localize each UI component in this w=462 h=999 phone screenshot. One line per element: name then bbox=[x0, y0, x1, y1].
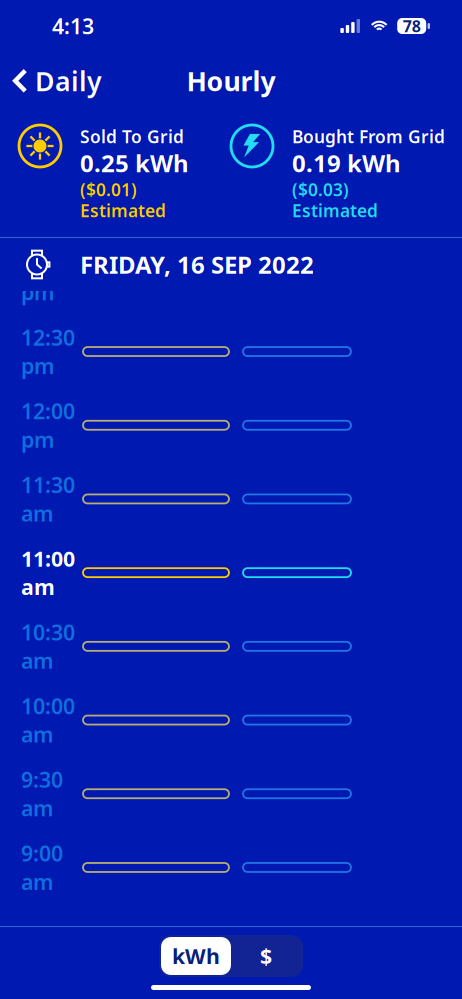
staticText: 4:13 bbox=[52, 12, 94, 40]
button[interactable]: kWh bbox=[161, 937, 231, 975]
staticText: am bbox=[21, 794, 53, 822]
staticText: Estimated bbox=[80, 199, 166, 222]
staticText: Daily bbox=[35, 63, 102, 99]
staticText: 9:00 bbox=[21, 839, 63, 867]
staticText: $ bbox=[260, 942, 272, 970]
staticText: Hourly bbox=[186, 63, 275, 99]
staticText: 11:00 bbox=[21, 544, 75, 573]
staticText: kWh bbox=[172, 942, 220, 970]
staticText: 1:00 bbox=[21, 249, 63, 278]
staticText: pm bbox=[21, 352, 54, 380]
staticText: 11:30 bbox=[21, 471, 75, 499]
staticText: ($0.01) bbox=[80, 178, 137, 201]
button[interactable]: 1:00 bbox=[0, 241, 462, 315]
staticText: 78 bbox=[403, 15, 421, 37]
staticText: am bbox=[21, 867, 53, 896]
button[interactable]: 11:00 bbox=[0, 536, 462, 609]
button[interactable]: 9:30 bbox=[0, 757, 462, 831]
button[interactable]: 12:30 bbox=[0, 315, 462, 388]
staticText: 10:30 bbox=[21, 618, 75, 646]
button[interactable]: 9:00 bbox=[0, 831, 462, 904]
button[interactable]: $ bbox=[231, 937, 301, 975]
staticText: 12:30 bbox=[21, 323, 75, 351]
button[interactable]: 10:00 bbox=[0, 683, 462, 757]
staticText: am bbox=[21, 499, 53, 527]
staticText: Sold To Grid bbox=[80, 125, 184, 148]
button[interactable]: 12:00 bbox=[0, 388, 462, 462]
staticText: 9:30 bbox=[21, 765, 63, 794]
button[interactable]: Daily bbox=[0, 55, 110, 107]
button[interactable]: 11:30 bbox=[0, 462, 462, 536]
staticText: 0.25 kWh bbox=[80, 147, 189, 179]
staticText: 12:00 bbox=[21, 397, 75, 425]
staticText: 0.19 kWh bbox=[292, 147, 401, 179]
staticText: 10:00 bbox=[21, 692, 75, 720]
staticText: am bbox=[21, 720, 53, 748]
staticText: pm bbox=[21, 278, 54, 306]
staticText: Estimated bbox=[292, 199, 378, 222]
staticText: ($0.03) bbox=[292, 178, 349, 201]
button[interactable]: 10:30 bbox=[0, 609, 462, 683]
staticText: FRIDAY, 16 SEP 2022 bbox=[80, 249, 314, 280]
staticText: Bought From Grid bbox=[292, 125, 445, 148]
staticText: am bbox=[21, 573, 55, 601]
staticText: pm bbox=[21, 425, 54, 453]
staticText: am bbox=[21, 646, 53, 675]
